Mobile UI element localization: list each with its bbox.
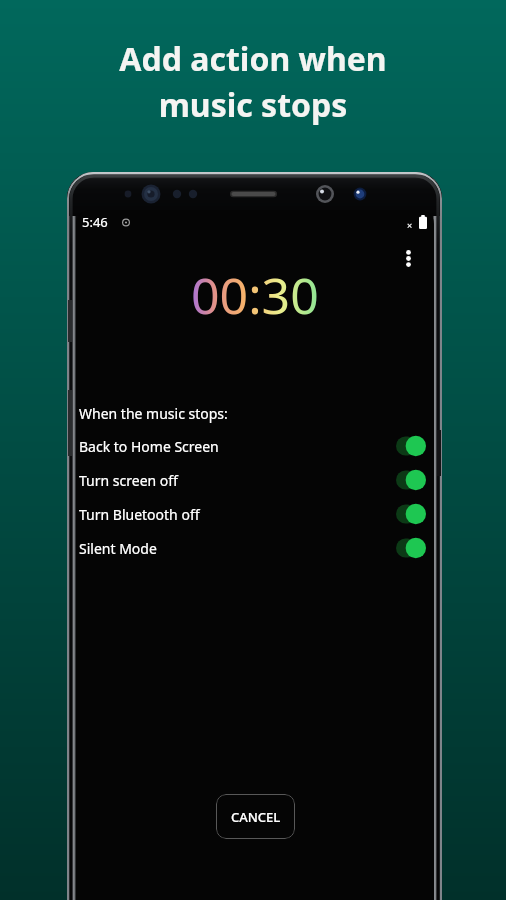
staticText: 5:46 [82, 213, 108, 231]
button[interactable]: Silent Mode [76, 531, 434, 565]
button[interactable]: CANCEL [216, 794, 295, 839]
staticText: Back to Home Screen [79, 437, 219, 456]
staticText: Silent Mode [79, 539, 157, 558]
staticText: 00:30 [191, 261, 319, 329]
staticText: Turn screen off [79, 471, 178, 490]
staticText: Turn Bluetooth off [79, 505, 200, 524]
button[interactable]: Back to Home Screen [76, 429, 434, 463]
staticText: Add action when music stops [119, 37, 387, 126]
button[interactable]: More options [388, 238, 428, 278]
staticText: When the music stops: [79, 404, 228, 423]
button[interactable]: Turn screen off [76, 463, 434, 497]
staticText: × [407, 219, 413, 231]
button[interactable]: Turn Bluetooth off [76, 497, 434, 531]
staticText: CANCEL [231, 808, 281, 826]
